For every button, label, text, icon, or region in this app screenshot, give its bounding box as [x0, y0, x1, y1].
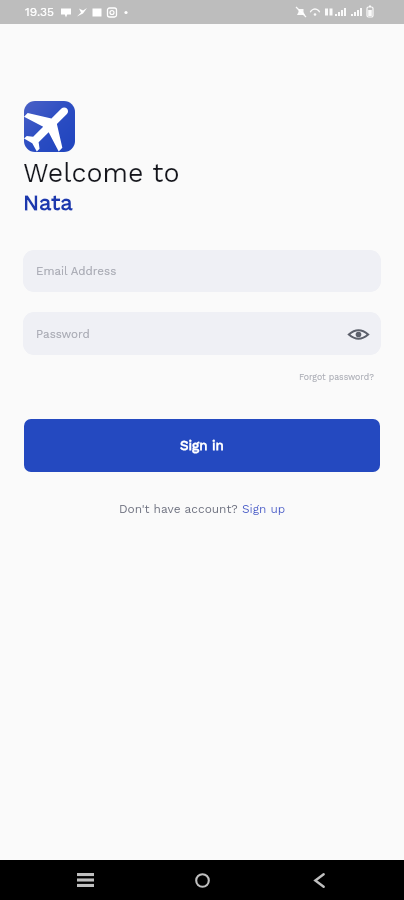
button[interactable]: Home — [179, 860, 226, 900]
staticText: Password — [36, 327, 90, 341]
staticText: Don't have account? — [119, 502, 242, 516]
button[interactable]: Show password — [346, 322, 370, 346]
button[interactable]: Sign in — [24, 419, 380, 472]
staticText: 19.35 — [25, 5, 55, 19]
button[interactable]: Forgot password? — [299, 372, 404, 382]
staticText: Welcome to — [23, 157, 180, 188]
staticText: Sign in — [180, 438, 224, 454]
button[interactable]: Sign up — [242, 502, 286, 516]
staticText: Nata — [23, 190, 73, 216]
button[interactable]: Recent apps — [62, 860, 109, 900]
staticText: Email Address — [36, 264, 117, 278]
button[interactable]: Email Address — [23, 250, 381, 292]
button[interactable]: Password — [23, 312, 381, 355]
button[interactable]: Back — [296, 860, 343, 900]
